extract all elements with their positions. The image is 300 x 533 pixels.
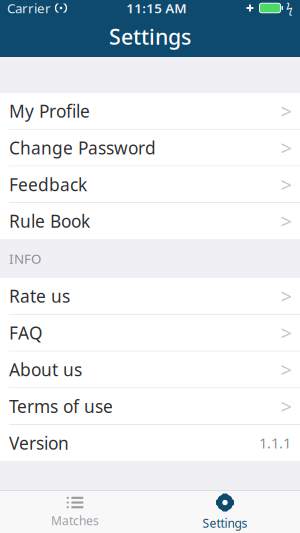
staticText: Settings [109, 22, 191, 51]
staticText: Terms of use [9, 395, 113, 418]
button[interactable]: About us [0, 351, 300, 387]
staticText: My Profile [9, 99, 90, 122]
staticText: Rate us [9, 285, 70, 308]
staticText: Feedback [9, 173, 87, 196]
staticText: Rule Book [9, 210, 90, 233]
staticText: > [280, 283, 291, 309]
staticText: About us [9, 358, 82, 381]
staticText: ϟ [286, 0, 293, 16]
button[interactable]: Rate us [0, 278, 300, 314]
staticText: Carrier [7, 0, 51, 17]
staticText: > [280, 393, 291, 419]
staticText: > [280, 319, 291, 346]
button[interactable]: Terms of use [0, 388, 300, 424]
button[interactable]: My Profile [0, 93, 300, 129]
staticText: Version [9, 431, 69, 454]
staticText: > [280, 134, 291, 161]
button[interactable]: Feedback [0, 166, 300, 202]
staticText: > [280, 171, 291, 198]
staticText: 1.1.1 [259, 433, 291, 453]
staticText: > [280, 356, 291, 383]
staticText: Matches [51, 512, 99, 528]
staticText: INFO [9, 250, 41, 267]
staticText: > [280, 208, 291, 234]
button[interactable]: Matches [0, 490, 150, 533]
staticText: FAQ [9, 321, 43, 344]
staticText: Settings [202, 515, 247, 531]
button[interactable]: Settings [150, 490, 300, 533]
staticText: > [280, 98, 291, 124]
button[interactable]: Change Password [0, 130, 300, 166]
button[interactable]: Rule Book [0, 203, 300, 239]
staticText: 11:15 AM [126, 0, 186, 17]
button[interactable]: FAQ [0, 315, 300, 351]
staticText: Change Password [9, 136, 156, 159]
